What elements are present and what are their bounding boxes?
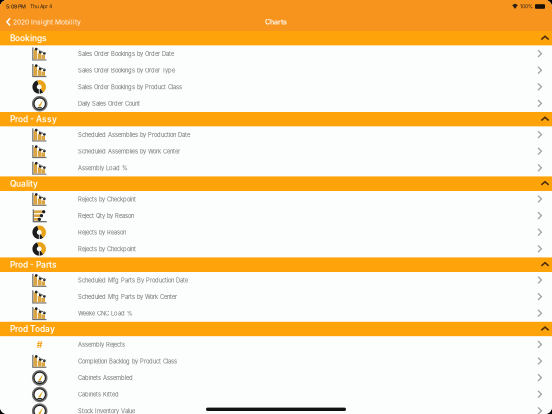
staticText: Scheduled Mfg Parts by Work Center [78,293,177,300]
staticText: Assembly Load % [78,165,128,172]
staticText: Rejects by Checkpoint [78,246,136,253]
staticText: Reject Qty by Reason [78,212,134,219]
button[interactable]: Bookings [0,31,552,46]
button[interactable]: Prod - Assy [0,112,552,127]
staticText: Scheduled Assemblies by Production Date [78,131,190,138]
button[interactable]: Scheduled Assemblies by Production Date [0,127,552,143]
button[interactable]: Completion Backlog by Product Class [0,353,552,370]
staticText: Prod Today [10,324,55,334]
staticText: Scheduled Mfg Parts By Production Date [78,277,188,284]
button[interactable]: Stock Inventory Value [0,403,552,414]
button[interactable]: Assembly Load % [0,160,552,176]
button[interactable]: Scheduled Mfg Parts By Production Date [0,272,552,289]
button[interactable]: Scheduled Assemblies by Work Center [0,143,552,160]
button[interactable]: Sales Order Bookings by Order Date [0,46,552,62]
staticText: Daily Sales Order Count [78,100,140,107]
staticText: Bookings [10,33,47,43]
staticText: Sales Order Bookings by Order Type [78,67,175,74]
staticText: Sales Order Bookings by Product Class [78,84,182,91]
staticText: 5:09 PM [6,3,26,10]
button[interactable]: Prod Today [0,322,552,336]
staticText: Weeke CNC Load % [78,310,133,317]
button[interactable]: # [0,336,552,353]
staticText: Assembly Rejects [78,341,125,348]
button[interactable]: 2020 Insight Mobility [0,14,81,29]
button[interactable]: Sales Order Bookings by Product Class [0,79,552,95]
staticText: Stock Inventory Value [78,408,135,414]
staticText: Cabinets Kitted [78,391,119,398]
staticText: 100% [520,3,533,9]
button[interactable]: Rejects by Checkpoint [0,241,552,257]
staticText: Scheduled Assemblies by Work Center [78,148,180,155]
button[interactable]: Scheduled Mfg Parts by Work Center [0,289,552,305]
button[interactable]: Rejects by Checkpoint [0,191,552,208]
staticText: Cabinets Assembled [78,374,133,381]
staticText: Prod - Parts [10,260,57,270]
button[interactable]: Sales Order Bookings by Order Type [0,62,552,79]
button[interactable]: Cabinets Assembled [0,370,552,386]
staticText: Quality [10,179,38,189]
button[interactable]: Daily Sales Order Count [0,95,552,112]
staticText: Prod - Assy [10,114,57,124]
staticText: 2020 Insight Mobility [13,18,81,26]
staticText: # [36,339,42,350]
staticText: Thu Apr 4 [30,3,52,9]
button[interactable]: Prod - Parts [0,257,552,272]
button[interactable]: Weeke CNC Load % [0,305,552,322]
staticText: Sales Order Bookings by Order Date [78,50,174,57]
button[interactable]: Reject Qty by Reason [0,208,552,224]
button[interactable]: Quality [0,176,552,191]
staticText: Completion Backlog by Product Class [78,358,177,365]
staticText: Rejects by Checkpoint [78,196,136,203]
button[interactable]: Cabinets Kitted [0,386,552,403]
staticText: Rejects by Reason [78,229,126,236]
button[interactable]: Rejects by Reason [0,224,552,241]
staticText: Charts [265,18,287,26]
